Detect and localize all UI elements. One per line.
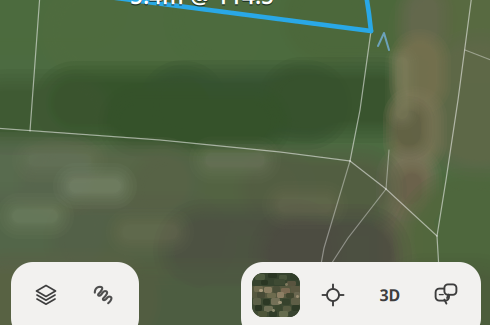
button[interactable]: Comments <box>418 262 474 325</box>
staticText: 3D <box>379 284 400 306</box>
button[interactable]: Recenter <box>305 262 361 325</box>
button[interactable]: Last photo <box>245 262 307 325</box>
button[interactable]: Measurement tool <box>72 262 134 325</box>
staticText: 5.4m @ 114.5° <box>130 0 284 12</box>
staticText: 5.4m @ 114.5° <box>130 0 284 10</box>
button[interactable]: 3D <box>362 262 418 325</box>
button[interactable]: Layers <box>15 262 77 325</box>
